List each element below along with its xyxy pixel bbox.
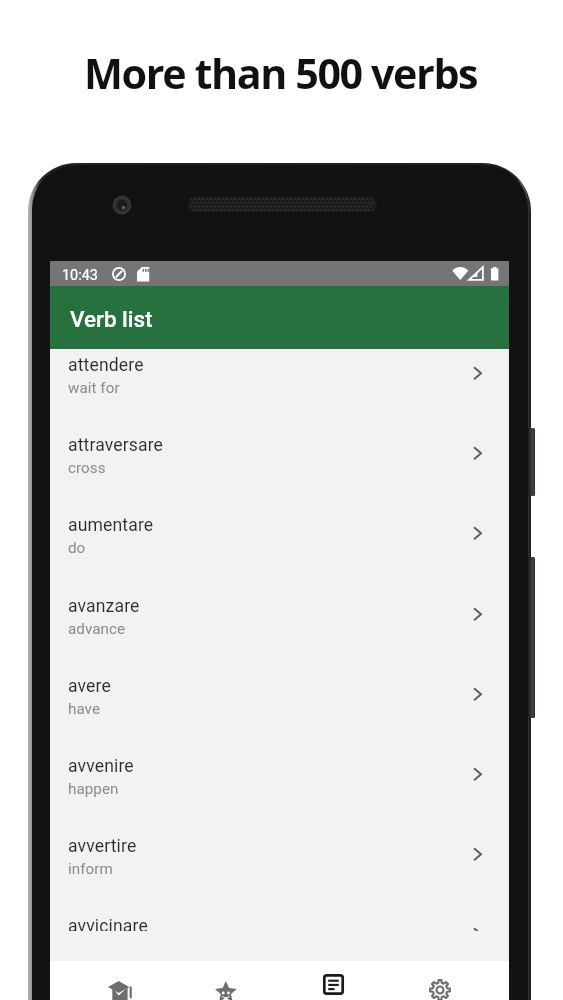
staticText: Verb list (70, 306, 153, 332)
staticText: attraversare (68, 435, 164, 456)
staticText: have (68, 700, 101, 718)
staticText: inform (68, 860, 113, 878)
staticText: More than 500 verbs (84, 45, 478, 101)
staticText: do (68, 539, 86, 557)
button[interactable]: Practice (173, 961, 279, 1000)
staticText: aumentare (68, 515, 154, 536)
button[interactable]: aumentare (50, 509, 509, 589)
button[interactable]: attraversare (50, 429, 509, 509)
staticText: cross (68, 459, 106, 477)
staticText: avvenire (68, 756, 134, 777)
button[interactable]: avanzare (50, 590, 509, 670)
staticText: avere (68, 676, 111, 697)
staticText: attendere (68, 355, 144, 376)
staticText: wait for (68, 379, 120, 397)
button[interactable]: Settings (385, 961, 491, 1000)
button[interactable]: attendere (50, 349, 509, 429)
button[interactable]: avvicinare (50, 910, 509, 931)
staticText: avanzare (68, 596, 140, 617)
button[interactable]: avvertire (50, 830, 509, 910)
button[interactable]: avere (50, 670, 509, 750)
staticText: avvicinare (68, 916, 148, 931)
button[interactable]: Verb list (279, 961, 385, 1000)
staticText: advance (68, 620, 126, 638)
staticText: avvertire (68, 836, 137, 857)
staticText: 10:43 (62, 267, 98, 284)
button[interactable]: Learn (66, 961, 173, 1000)
staticText: happen (68, 780, 119, 798)
button[interactable]: avvenire (50, 750, 509, 830)
